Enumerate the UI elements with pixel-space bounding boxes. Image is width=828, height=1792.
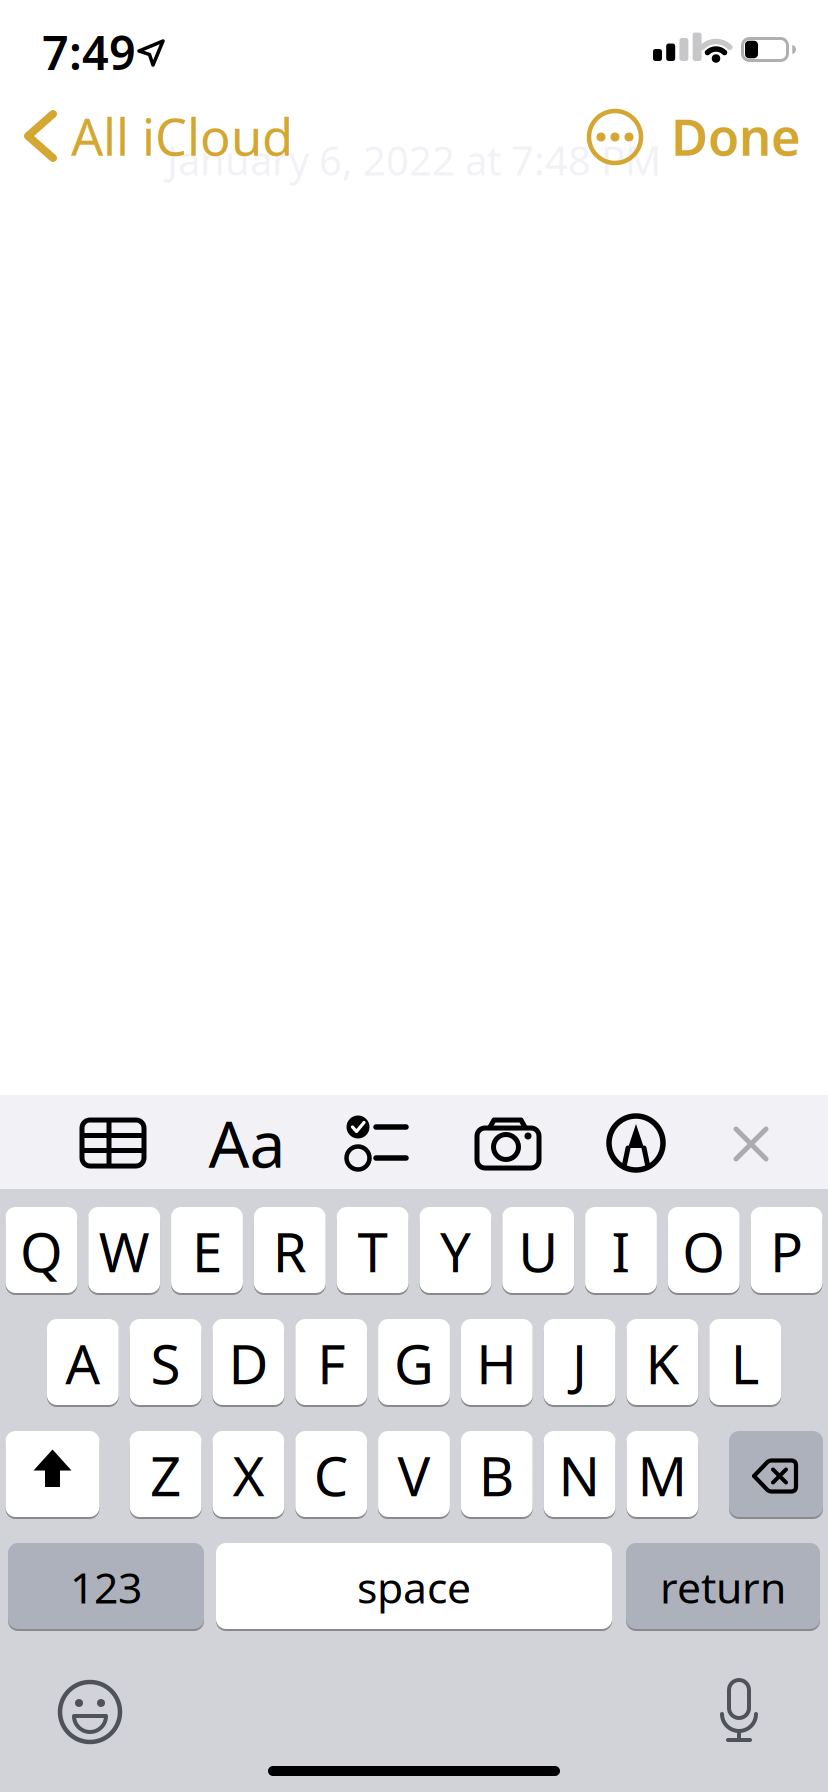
- button[interactable]: S: [130, 1318, 201, 1406]
- button[interactable]: P: [751, 1206, 822, 1294]
- button[interactable]: L: [709, 1318, 781, 1406]
- button[interactable]: T: [337, 1206, 408, 1294]
- button[interactable]: Markup: [0, 0, 828, 1792]
- button[interactable]: R: [254, 1206, 326, 1294]
- button[interactable]: Y: [419, 1206, 491, 1294]
- button[interactable]: D: [212, 1318, 284, 1406]
- button[interactable]: C: [295, 1430, 367, 1518]
- staticText: I: [611, 1215, 630, 1287]
- staticText: O: [682, 1215, 725, 1287]
- staticText: H: [476, 1327, 517, 1399]
- button[interactable]: Formatting: [0, 0, 828, 1792]
- button[interactable]: I: [585, 1206, 657, 1294]
- button[interactable]: U: [502, 1206, 574, 1294]
- button[interactable]: V: [378, 1430, 450, 1518]
- button[interactable]: G: [378, 1318, 450, 1406]
- staticText: W: [99, 1215, 150, 1287]
- staticText: U: [518, 1215, 558, 1287]
- button[interactable]: Z: [130, 1430, 201, 1518]
- button[interactable]: A: [47, 1318, 119, 1406]
- button[interactable]: return: [626, 1542, 820, 1630]
- staticText: N: [559, 1439, 601, 1511]
- button[interactable]: O: [668, 1206, 740, 1294]
- button[interactable]: 123: [8, 1542, 204, 1630]
- button[interactable]: All iCloud: [0, 91, 300, 181]
- staticText: F: [317, 1327, 345, 1399]
- button[interactable]: Shift: [5, 1430, 99, 1518]
- staticText: A: [65, 1327, 100, 1399]
- button[interactable]: Done: [671, 102, 801, 170]
- button[interactable]: Q: [5, 1206, 77, 1294]
- staticText: J: [572, 1327, 587, 1399]
- staticText: Y: [440, 1215, 471, 1287]
- staticText: 7:49: [42, 21, 136, 83]
- button[interactable]: J: [544, 1318, 615, 1406]
- button[interactable]: W: [88, 1206, 160, 1294]
- staticText: V: [397, 1439, 430, 1511]
- staticText: E: [192, 1215, 222, 1287]
- staticText: All iCloud: [71, 102, 293, 170]
- button[interactable]: Dictate: [709, 1678, 769, 1742]
- staticText: space: [357, 1559, 471, 1615]
- staticText: L: [731, 1327, 760, 1399]
- button[interactable]: N: [544, 1430, 615, 1518]
- staticText: Aa: [208, 1100, 285, 1185]
- button[interactable]: Emoji: [60, 1682, 120, 1742]
- staticText: B: [479, 1439, 515, 1511]
- button[interactable]: Delete: [729, 1430, 823, 1518]
- staticText: G: [394, 1327, 434, 1399]
- staticText: R: [273, 1215, 307, 1287]
- button[interactable]: X: [212, 1430, 284, 1518]
- button[interactable]: Camera: [0, 0, 828, 1792]
- staticText: D: [228, 1327, 268, 1399]
- button[interactable]: K: [626, 1318, 698, 1406]
- staticText: return: [660, 1559, 786, 1615]
- staticText: S: [151, 1327, 181, 1399]
- staticText: T: [358, 1215, 388, 1287]
- button[interactable]: F: [295, 1318, 367, 1406]
- staticText: C: [314, 1439, 349, 1511]
- button[interactable]: E: [171, 1206, 243, 1294]
- staticText: K: [645, 1327, 679, 1399]
- staticText: Q: [20, 1215, 63, 1287]
- button[interactable]: M: [626, 1430, 698, 1518]
- button[interactable]: More: [589, 111, 641, 163]
- staticText: Z: [150, 1439, 181, 1511]
- staticText: P: [770, 1215, 803, 1287]
- staticText: X: [232, 1439, 264, 1511]
- staticText: January 6, 2022 at 7:48 PM: [167, 133, 661, 186]
- staticText: 123: [70, 1559, 142, 1615]
- button[interactable]: Dismiss toolbar: [0, 0, 828, 1792]
- button[interactable]: space: [216, 1542, 612, 1630]
- button[interactable]: Insert table: [0, 0, 828, 1792]
- button[interactable]: Checklist: [0, 0, 828, 1792]
- button[interactable]: B: [461, 1430, 533, 1518]
- staticText: Done: [671, 102, 801, 170]
- button[interactable]: H: [461, 1318, 533, 1406]
- staticText: M: [637, 1439, 687, 1511]
